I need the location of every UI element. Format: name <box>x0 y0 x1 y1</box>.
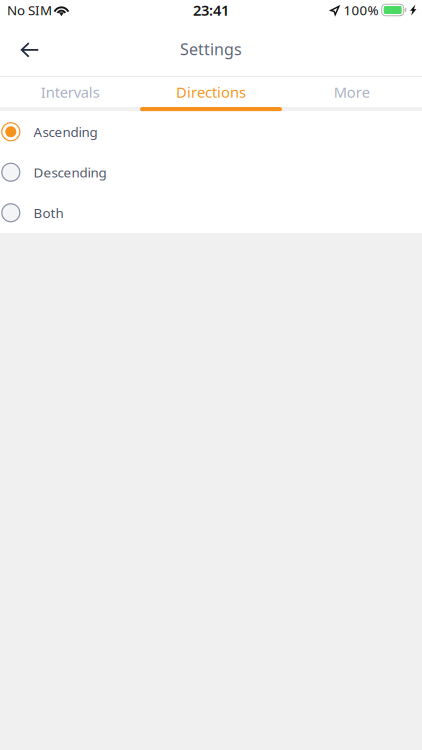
button[interactable]: More <box>281 77 422 107</box>
staticText: 23:41 <box>193 0 229 20</box>
staticText: Both <box>34 204 64 222</box>
staticText: 100% <box>343 1 378 19</box>
staticText: Intervals <box>41 82 100 102</box>
staticText: Ascending <box>34 123 98 141</box>
button[interactable]: Ascending <box>0 111 422 152</box>
staticText: No SIM <box>7 1 52 19</box>
staticText: Settings <box>180 38 242 60</box>
staticText: More <box>334 82 370 102</box>
button[interactable]: Back <box>0 29 52 73</box>
button[interactable]: Intervals <box>0 77 141 107</box>
button[interactable]: Directions <box>141 77 281 107</box>
button[interactable]: Descending <box>0 152 422 192</box>
button[interactable]: Both <box>0 192 422 233</box>
staticText: Directions <box>176 82 246 102</box>
staticText: Descending <box>34 163 107 181</box>
